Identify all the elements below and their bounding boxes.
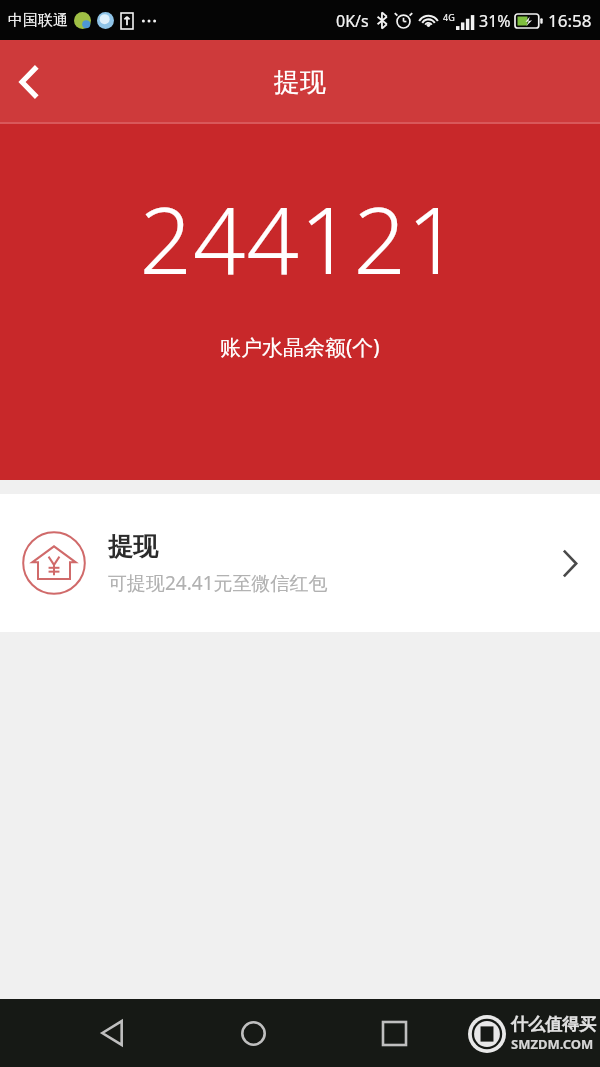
- staticText: 244121: [139, 176, 461, 301]
- staticText: 4G: [443, 11, 455, 23]
- staticText: 账户水晶余额(个): [220, 333, 380, 362]
- staticText: 提现: [274, 66, 326, 99]
- button[interactable]: Back: [84, 1005, 140, 1061]
- button[interactable]: Home: [225, 1005, 281, 1061]
- staticText: 16:58: [548, 9, 592, 32]
- button[interactable]: 提现: [0, 494, 600, 632]
- staticText: 可提现24.41元至微信红包: [108, 570, 328, 596]
- staticText: 什么值得买: [511, 1014, 596, 1035]
- staticText: 31%: [479, 10, 511, 32]
- staticText: 提现: [108, 531, 158, 562]
- button[interactable]: Recent apps: [366, 1005, 422, 1061]
- button[interactable]: Back: [0, 54, 56, 110]
- staticText: 中国联通: [8, 11, 68, 30]
- staticText: 0K/s: [336, 10, 369, 32]
- staticText: SMZDM.COM: [511, 1035, 594, 1053]
